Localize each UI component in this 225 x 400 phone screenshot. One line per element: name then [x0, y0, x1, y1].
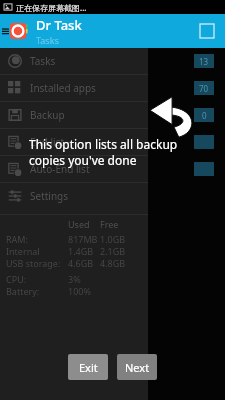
button[interactable]: Auto-End list — [0, 156, 225, 182]
button[interactable]: End list — [0, 129, 225, 155]
button[interactable]: Tasks — [0, 48, 225, 74]
staticText: Tasks — [36, 34, 59, 46]
staticText: Next — [125, 360, 150, 375]
staticText: 4.8GB — [100, 257, 132, 269]
staticText: Auto-End list — [30, 162, 194, 176]
staticText: USB storage: — [6, 257, 68, 269]
staticText: 4.6GB — [68, 257, 100, 269]
staticText: This option lists all backup copies you'… — [29, 136, 224, 168]
staticText: Used — [68, 218, 100, 230]
staticText: 0 — [202, 110, 207, 121]
staticText: RAM: — [6, 233, 68, 245]
staticText: 13 — [199, 56, 209, 67]
staticText: Battery: — [6, 285, 68, 297]
staticText: 817MB — [68, 233, 100, 245]
button[interactable]: Menu — [0, 14, 10, 48]
staticText: Internal mem.: — [6, 245, 68, 257]
staticText: 70 — [199, 83, 209, 94]
staticText: 正在保存屏幕截图... — [16, 2, 87, 13]
button[interactable]: Select all — [189, 14, 225, 48]
staticText: End list — [30, 135, 194, 149]
staticText: Installed apps — [30, 81, 194, 95]
staticText: 3% — [68, 273, 100, 285]
staticText: 1.4GB — [68, 245, 100, 257]
staticText: 2.1GB — [100, 245, 132, 257]
button[interactable]: Backup — [0, 102, 225, 128]
staticText: 100% — [68, 285, 100, 297]
staticText: 1.0GB — [100, 233, 132, 245]
button[interactable]: Exit — [68, 354, 108, 380]
staticText: Free — [100, 218, 132, 230]
staticText: Exit — [79, 360, 98, 375]
staticText: Settings — [30, 189, 194, 203]
staticText: CPU: — [6, 273, 68, 285]
button[interactable]: Settings — [0, 183, 225, 209]
button[interactable]: Installed apps — [0, 75, 225, 101]
button[interactable]: Next — [117, 354, 157, 380]
staticText: Dr Task — [36, 16, 82, 34]
staticText: Tasks — [30, 54, 194, 68]
staticText: Backup — [30, 108, 194, 122]
